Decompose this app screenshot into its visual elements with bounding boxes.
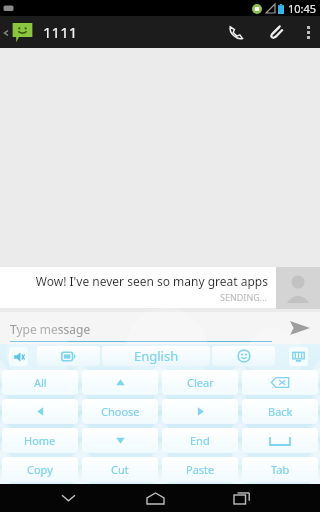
button[interactable]: More options xyxy=(296,16,320,48)
button[interactable]: Switch keyboard xyxy=(276,344,320,368)
button[interactable]: Back xyxy=(242,399,318,424)
button[interactable]: Attach xyxy=(256,16,296,48)
button[interactable]: Back xyxy=(46,484,90,512)
staticText: Home xyxy=(24,433,56,448)
staticText: Choose xyxy=(101,404,140,419)
staticText: Clear xyxy=(187,375,214,390)
button[interactable]: Copy xyxy=(2,457,78,482)
button[interactable]: Type message xyxy=(10,312,272,344)
button[interactable]: Call xyxy=(216,16,256,48)
staticText: 1111 xyxy=(43,22,78,42)
button[interactable]: Backspace xyxy=(242,370,318,395)
button[interactable]: Tab xyxy=(242,457,318,482)
button[interactable]: Paste xyxy=(162,457,238,482)
staticText: Back xyxy=(268,404,293,419)
staticText: Paste xyxy=(186,462,215,477)
button[interactable]: All xyxy=(2,370,78,395)
button[interactable] xyxy=(212,346,275,366)
button[interactable] xyxy=(0,22,37,43)
button[interactable]: Send xyxy=(280,312,320,344)
staticText: All xyxy=(34,375,47,390)
button[interactable]: Choose xyxy=(82,399,158,424)
button[interactable]: Up xyxy=(82,370,158,395)
staticText: End xyxy=(190,433,210,448)
staticText: Cut xyxy=(111,462,129,477)
button[interactable]: Wow! I've never seen so many great apps xyxy=(0,267,320,309)
staticText: Type message xyxy=(10,321,91,337)
button[interactable]: End xyxy=(162,428,238,453)
button[interactable] xyxy=(37,346,100,366)
staticText: Wow! I've never seen so many great apps xyxy=(35,273,268,289)
button[interactable]: Space xyxy=(242,428,318,453)
button[interactable]: Home xyxy=(133,484,177,512)
staticText: SENDING... xyxy=(220,291,268,303)
button[interactable]: Clear xyxy=(162,370,238,395)
staticText: Tab xyxy=(271,462,290,477)
button[interactable]: Home xyxy=(2,428,78,453)
staticText: English xyxy=(134,347,179,365)
button[interactable]: Recent apps xyxy=(220,484,264,512)
button[interactable]: Cut xyxy=(82,457,158,482)
button[interactable]: Down xyxy=(82,428,158,453)
button[interactable]: Left xyxy=(2,399,78,424)
staticText: Copy xyxy=(27,462,53,477)
button[interactable]: Right xyxy=(162,399,238,424)
button[interactable]: English xyxy=(102,346,210,366)
button[interactable]: Voice input xyxy=(0,344,36,368)
staticText: 10:45 xyxy=(288,1,317,16)
